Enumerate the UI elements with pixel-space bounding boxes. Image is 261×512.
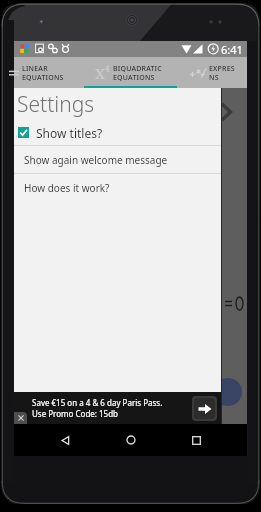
- staticText: EXPRES NS: [209, 64, 235, 82]
- button[interactable]: Open ad: [192, 396, 217, 421]
- button[interactable]: Home: [116, 425, 146, 455]
- button[interactable]: LINEAR EQUATIONS: [14, 57, 84, 88]
- button[interactable]: Show again welcome message: [14, 146, 221, 173]
- button[interactable]: How does it work?: [14, 174, 221, 201]
- staticText: LINEAR EQUATIONS: [22, 64, 64, 82]
- staticText: BIQUADRATIC EQUATIONS: [113, 64, 162, 82]
- button[interactable]: Recents: [181, 425, 211, 455]
- staticText: Settings: [17, 90, 95, 119]
- button[interactable]: Close ad: [14, 412, 27, 424]
- staticText: X: [95, 63, 105, 83]
- button[interactable]: X: [84, 57, 177, 88]
- staticText: Show titles?: [36, 125, 103, 141]
- staticText: 4: [105, 63, 110, 74]
- staticText: 6:41: [221, 42, 243, 57]
- staticText: Show again welcome message: [24, 153, 168, 167]
- button[interactable]: EXPRES NS: [177, 57, 247, 88]
- staticText: Save €15 on a 4 & 6 day Paris Pass.: [32, 397, 163, 408]
- staticText: Use Promo Code: 15db: [32, 408, 119, 419]
- button[interactable]: Back: [50, 425, 80, 455]
- staticText: How does it work?: [24, 181, 110, 195]
- button[interactable]: Show titles?: [14, 120, 221, 145]
